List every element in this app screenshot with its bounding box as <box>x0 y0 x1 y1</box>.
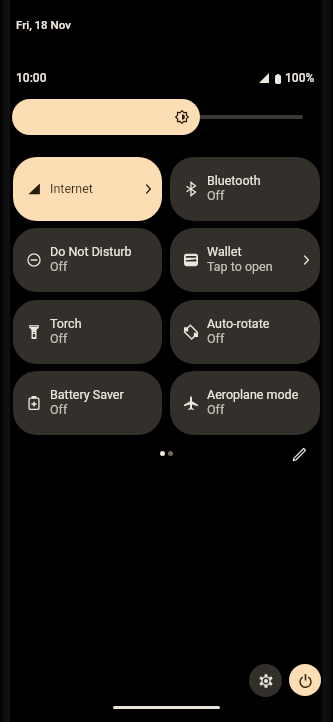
button[interactable]: Power <box>289 664 321 696</box>
button[interactable]: Wallet <box>170 228 320 292</box>
staticText: Bluetooth <box>207 173 261 188</box>
staticText: Internet <box>50 181 93 196</box>
button[interactable]: Aeroplane mode <box>170 371 320 435</box>
staticText: Tap to open <box>207 259 273 274</box>
button[interactable]: Auto-rotate <box>170 300 320 364</box>
staticText: Off <box>207 188 225 203</box>
button[interactable]: Do Not Disturb <box>13 228 162 292</box>
button[interactable]: Brightness <box>12 99 303 135</box>
button[interactable]: Settings <box>249 664 282 697</box>
staticText: Off <box>50 259 68 274</box>
staticText: Torch <box>50 316 82 331</box>
staticText: 100% <box>285 71 315 85</box>
button[interactable]: Bluetooth <box>170 157 320 221</box>
staticText: Off <box>50 331 68 346</box>
staticText: Fri, 18 Nov <box>16 18 71 31</box>
staticText: 10:00 <box>16 71 47 85</box>
staticText: Battery Saver <box>50 387 124 402</box>
staticText: Off <box>207 331 225 346</box>
button[interactable]: Battery Saver <box>13 371 162 435</box>
staticText: Off <box>207 402 225 417</box>
button[interactable]: Edit tiles <box>287 442 311 466</box>
staticText: Off <box>50 402 68 417</box>
button[interactable]: Internet <box>13 157 162 221</box>
staticText: Auto-rotate <box>207 316 270 331</box>
staticText: Do Not Disturb <box>50 244 132 259</box>
staticText: Aeroplane mode <box>207 387 299 402</box>
button[interactable]: Torch <box>13 300 162 364</box>
staticText: Wallet <box>207 244 242 259</box>
